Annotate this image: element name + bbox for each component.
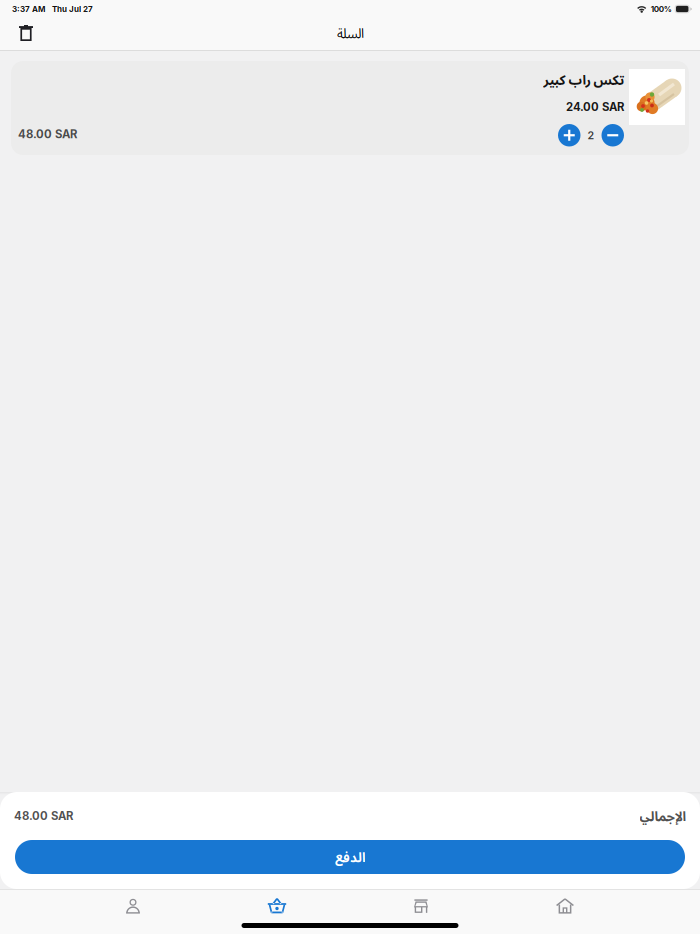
button[interactable]: Account — [61, 889, 205, 923]
button[interactable]: الدفع — [15, 840, 685, 874]
button[interactable]: Stores — [349, 889, 493, 923]
staticText: الإجمالي — [639, 807, 686, 825]
button[interactable]: Home — [493, 889, 637, 923]
button[interactable]: Empty cart — [0, 18, 72, 51]
staticText: الدفع — [334, 848, 365, 866]
staticText: 48.00 SAR — [18, 127, 77, 141]
staticText: 3:37 AM — [12, 4, 45, 14]
staticText: السلة — [336, 24, 363, 42]
button[interactable]: Cart — [205, 889, 349, 923]
staticText: تكس راب كبير — [543, 70, 624, 89]
staticText: Thu Jul 27 — [52, 4, 93, 14]
staticText: 2 — [587, 129, 594, 142]
staticText: 48.00 SAR — [14, 809, 73, 823]
staticText: 100% — [651, 4, 672, 14]
button[interactable]: Decrease quantity — [601, 124, 624, 146]
button[interactable]: Increase quantity — [558, 124, 580, 146]
staticText: 24.00 SAR — [566, 100, 624, 114]
